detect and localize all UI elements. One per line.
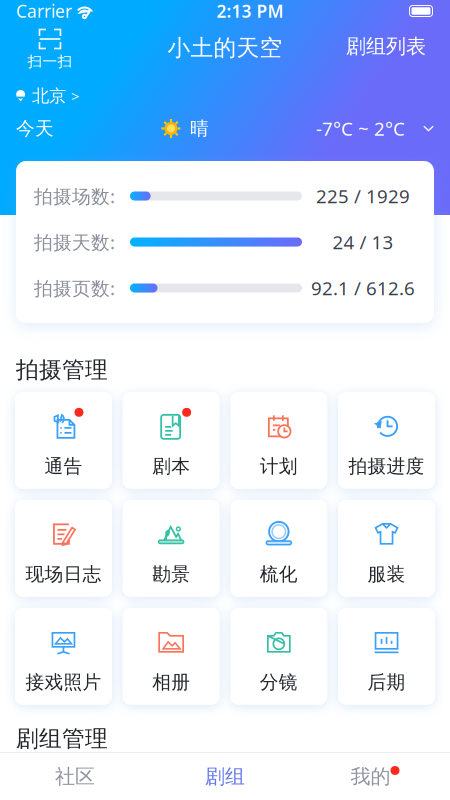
- staticText: 225 / 1929: [316, 184, 410, 208]
- button[interactable]: 剧组: [150, 753, 300, 800]
- button[interactable]: 相册: [123, 608, 220, 705]
- staticText: >: [71, 86, 79, 106]
- staticText: 晴: [190, 117, 209, 140]
- button[interactable]: 勘景: [123, 500, 220, 597]
- staticText: 拍摄进度: [349, 455, 425, 478]
- staticText: 24 / 13: [332, 230, 393, 254]
- button[interactable]: 社区: [0, 753, 150, 800]
- button[interactable]: 梳化: [230, 500, 327, 597]
- staticText: 我的: [350, 764, 390, 789]
- staticText: 今天: [16, 117, 54, 140]
- staticText: 勘景: [152, 563, 190, 586]
- staticText: 拍摄管理: [16, 356, 108, 384]
- staticText: 通告: [44, 455, 82, 478]
- staticText: 拍摄页数:: [34, 276, 115, 300]
- button[interactable]: 拍摄进度: [338, 392, 435, 489]
- staticText: 剧组管理: [16, 725, 108, 753]
- staticText: 社区: [55, 764, 95, 789]
- staticText: 现场日志: [25, 563, 101, 586]
- button[interactable]: 扫一扫: [24, 22, 76, 76]
- staticText: 小土的天空: [167, 34, 282, 62]
- staticText: 接戏照片: [25, 671, 101, 694]
- staticText: Carrier: [16, 0, 72, 22]
- button[interactable]: 我的: [300, 753, 450, 800]
- staticText: 北京: [32, 85, 66, 107]
- staticText: -7°C ~ 2°C: [316, 116, 405, 141]
- staticText: 相册: [152, 671, 190, 694]
- staticText: 梳化: [260, 563, 298, 586]
- button[interactable]: 分镜: [230, 608, 327, 705]
- staticText: 剧本: [152, 455, 190, 478]
- staticText: 扫一扫: [27, 52, 72, 70]
- staticText: 2:13 PM: [216, 0, 283, 22]
- staticText: 后期: [368, 671, 406, 694]
- staticText: 拍摄天数:: [34, 230, 115, 254]
- button[interactable]: 后期: [338, 608, 435, 705]
- staticText: 计划: [260, 455, 298, 478]
- button[interactable]: 现场日志: [15, 500, 112, 597]
- button[interactable]: 北京: [0, 80, 450, 112]
- button[interactable]: 服装: [338, 500, 435, 597]
- button[interactable]: 剧本: [123, 392, 220, 489]
- button[interactable]: 接戏照片: [15, 608, 112, 705]
- staticText: 剧组: [205, 764, 245, 789]
- staticText: 分镜: [260, 671, 298, 694]
- staticText: 92.1 / 612.6: [311, 276, 415, 300]
- button[interactable]: 通告: [15, 392, 112, 489]
- staticText: 拍摄场数:: [34, 184, 115, 208]
- staticText: 剧组列表: [346, 34, 426, 59]
- button[interactable]: 剧组列表: [346, 22, 426, 76]
- staticText: 服装: [368, 563, 406, 586]
- button[interactable]: 计划: [230, 392, 327, 489]
